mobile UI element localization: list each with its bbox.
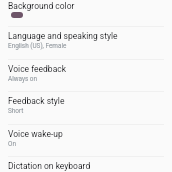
staticText: Voice feedback [8,64,67,74]
staticText: Language and speaking style [8,31,118,41]
staticText: Voice wake-up [8,129,63,139]
staticText: Feedback style [8,96,65,106]
staticText: Always on [8,75,38,83]
other: Selected background color [11,12,23,18]
button[interactable]: Language and speaking style [0,26,172,59]
staticText: On [8,140,16,148]
button[interactable]: Feedback style [0,91,172,124]
staticText: English (US), Female [8,42,67,50]
staticText: Dictation on keyboard [8,161,91,171]
button[interactable]: Background color [0,0,172,26]
button[interactable]: Voice wake-up [0,124,172,156]
button[interactable]: Dictation on keyboard [0,156,172,172]
button[interactable]: Voice feedback [0,59,172,92]
staticText: Short [8,107,24,115]
staticText: Background color [8,1,75,11]
